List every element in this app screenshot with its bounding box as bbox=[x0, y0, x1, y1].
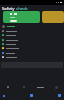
button[interactable] bbox=[0, 51, 64, 55]
button[interactable]: App three bbox=[58, 94, 61, 97]
staticText: Safety bbox=[2, 6, 15, 11]
button[interactable] bbox=[0, 38, 64, 42]
button[interactable]: Search bbox=[16, 83, 32, 91]
button[interactable] bbox=[0, 42, 64, 46]
button[interactable] bbox=[0, 46, 64, 50]
button[interactable] bbox=[0, 29, 64, 33]
button[interactable] bbox=[42, 11, 64, 23]
button[interactable]: App two bbox=[30, 94, 33, 97]
button[interactable] bbox=[0, 33, 64, 37]
button[interactable]: Address bbox=[32, 83, 48, 91]
button[interactable] bbox=[0, 55, 64, 59]
staticText: check bbox=[15, 6, 28, 11]
button[interactable] bbox=[3, 11, 40, 23]
button[interactable]: Home bbox=[0, 83, 16, 91]
button[interactable]: Menu bbox=[48, 83, 64, 91]
button[interactable] bbox=[0, 24, 64, 29]
button[interactable]: App one bbox=[3, 95, 5, 97]
